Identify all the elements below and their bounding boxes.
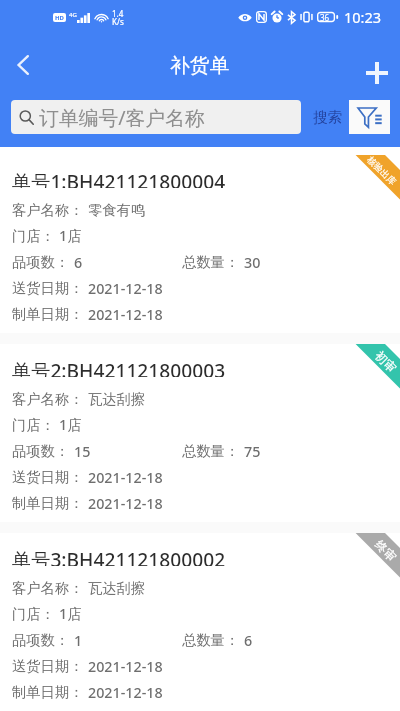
button[interactable]: Back bbox=[0, 42, 46, 88]
staticText: 1店 bbox=[59, 415, 82, 435]
staticText: 制单日期： bbox=[12, 683, 84, 701]
staticText: 送货日期： bbox=[12, 657, 84, 675]
staticText: 单号1:BH421121800004 bbox=[12, 168, 226, 188]
staticText: 客户名称： bbox=[12, 579, 84, 597]
staticText: 2021-12-18 bbox=[88, 305, 163, 324]
staticText: 2021-12-18 bbox=[88, 494, 163, 513]
staticText: 瓦达刮擦 bbox=[88, 390, 146, 408]
staticText: 2021-12-18 bbox=[88, 683, 163, 702]
staticText: 制单日期： bbox=[12, 494, 84, 512]
staticText: 品项数： bbox=[12, 631, 70, 649]
staticText: 初审 bbox=[372, 348, 400, 375]
staticText: 补货单 bbox=[170, 53, 230, 78]
button[interactable]: 订单编号/客户名称 bbox=[11, 100, 301, 134]
staticText: 订单编号/客户名称 bbox=[39, 104, 205, 131]
staticText: 2021-12-18 bbox=[88, 279, 163, 298]
staticText: 门店： bbox=[12, 227, 55, 245]
staticText: 客户名称： bbox=[12, 390, 84, 408]
staticText: 1 bbox=[74, 631, 83, 650]
staticText: 2021-12-18 bbox=[88, 657, 163, 676]
staticText: 送货日期： bbox=[12, 468, 84, 486]
staticText: 10:23 bbox=[344, 7, 382, 27]
staticText: 6 bbox=[74, 253, 83, 272]
staticText: 品项数： bbox=[12, 253, 70, 271]
staticText: 核验出库 bbox=[365, 154, 399, 187]
staticText: 终审 bbox=[372, 537, 400, 564]
button[interactable]: Add bbox=[354, 50, 400, 96]
staticText: 门店： bbox=[12, 416, 55, 434]
staticText: HD bbox=[55, 14, 64, 22]
staticText: 15 bbox=[74, 442, 91, 461]
staticText: 制单日期： bbox=[12, 305, 84, 323]
button[interactable]: Filter bbox=[349, 100, 390, 134]
button[interactable]: 单号2:BH421121800003 bbox=[0, 344, 400, 522]
staticText: 1店 bbox=[59, 604, 82, 624]
button[interactable]: 单号1:BH421121800004 bbox=[0, 155, 400, 333]
staticText: 4G bbox=[69, 11, 77, 19]
staticText: 瓦达刮擦 bbox=[88, 579, 146, 597]
staticText: 搜索 bbox=[313, 108, 342, 126]
staticText: 门店： bbox=[12, 605, 55, 623]
staticText: 总数量： bbox=[182, 253, 240, 271]
staticText: 品项数： bbox=[12, 442, 70, 460]
button[interactable]: 搜索 bbox=[313, 100, 342, 134]
staticText: 单号2:BH421121800003 bbox=[12, 357, 226, 377]
staticText: 单号3:BH421121800002 bbox=[12, 546, 226, 566]
staticText: 1.4 K/s bbox=[112, 8, 124, 27]
staticText: 36 bbox=[320, 12, 330, 23]
staticText: 零食有鸣 bbox=[88, 201, 146, 219]
staticText: 30 bbox=[244, 253, 261, 272]
staticText: 客户名称： bbox=[12, 201, 84, 219]
staticText: 总数量： bbox=[182, 442, 240, 460]
staticText: 送货日期： bbox=[12, 279, 84, 297]
staticText: 6 bbox=[244, 631, 253, 650]
staticText: 1店 bbox=[59, 226, 82, 246]
button[interactable]: 单号3:BH421121800002 bbox=[0, 533, 400, 711]
staticText: 总数量： bbox=[182, 631, 240, 649]
staticText: 75 bbox=[244, 442, 261, 461]
staticText: 2021-12-18 bbox=[88, 468, 163, 487]
